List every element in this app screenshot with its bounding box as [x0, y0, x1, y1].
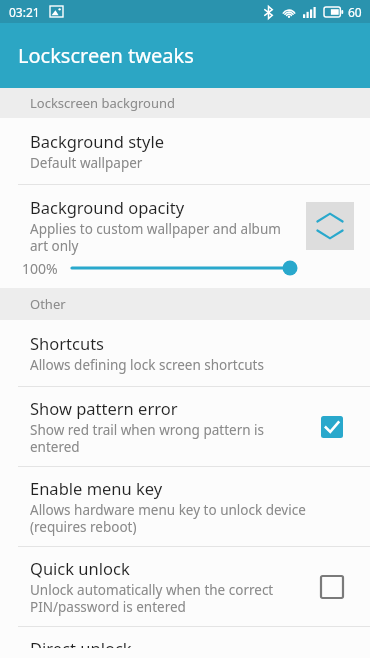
staticText: Allows hardware menu key to unlock devic…: [30, 501, 352, 536]
button[interactable]: Show pattern error: [0, 387, 370, 466]
staticText: Show pattern error: [30, 397, 178, 419]
staticText: 03:21: [9, 4, 40, 20]
button[interactable]: Background style: [0, 118, 370, 184]
button[interactable]: Enable menu key: [0, 467, 370, 546]
staticText: Other: [30, 295, 66, 313]
button[interactable]: Background opacity: [0, 185, 370, 288]
staticText: Applies to custom wallpaper and album ar…: [30, 220, 298, 255]
staticText: Show red trail when wrong pattern is ent…: [30, 421, 302, 456]
staticText: Allows defining lock screen shortcuts: [30, 356, 264, 374]
staticText: Background style: [30, 130, 164, 152]
staticText: Direct unlock: [30, 637, 132, 648]
button[interactable]: Quick unlock: [0, 547, 370, 626]
button[interactable]: Unchecked: [312, 567, 352, 607]
staticText: Lockscreen tweaks: [18, 42, 194, 69]
staticText: Lockscreen background: [30, 94, 176, 112]
staticText: 60: [348, 4, 362, 20]
button[interactable]: Checked: [312, 407, 352, 447]
staticText: Enable menu key: [30, 477, 163, 499]
staticText: Quick unlock: [30, 557, 130, 579]
button[interactable]: Direct unlock: [0, 627, 370, 658]
staticText: Shortcuts: [30, 332, 104, 354]
staticText: 100%: [22, 259, 58, 278]
staticText: Unlock automatically when the correct PI…: [30, 581, 302, 616]
button[interactable]: Adjust opacity: [306, 202, 354, 250]
button[interactable]: Shortcuts: [0, 320, 370, 386]
staticText: Background opacity: [30, 196, 185, 218]
staticText: Default wallpaper: [30, 154, 143, 172]
